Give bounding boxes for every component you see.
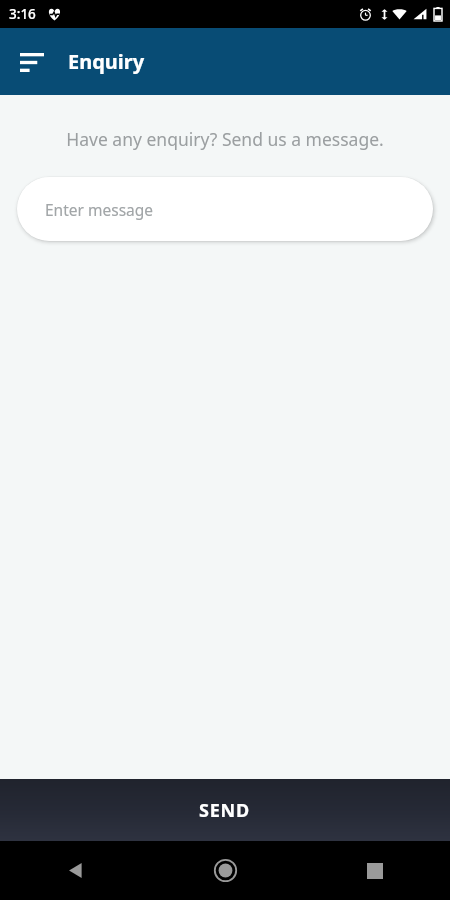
button[interactable]: Back — [0, 841, 150, 900]
button[interactable]: Recent apps — [300, 841, 450, 900]
staticText: SEND — [199, 798, 251, 823]
staticText: Enter message — [45, 199, 154, 220]
button[interactable]: SEND — [0, 779, 450, 841]
button[interactable]: Home — [150, 841, 300, 900]
staticText: Have any enquiry? Send us a message. — [16, 127, 434, 151]
staticText: Enquiry — [68, 48, 145, 75]
button[interactable]: Open navigation menu — [10, 40, 54, 84]
button[interactable]: Enter message — [17, 177, 433, 241]
staticText: 3:16 — [9, 5, 36, 23]
